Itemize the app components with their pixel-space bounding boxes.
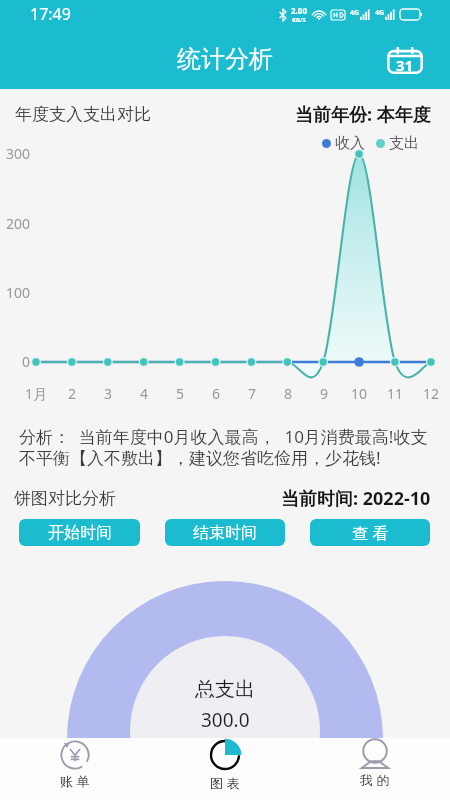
staticText: 4G [350, 8, 360, 18]
other: Profile [361, 741, 389, 769]
staticText: 4 [127, 384, 161, 403]
staticText: 7 [235, 384, 269, 403]
staticText: 当前年份: 本年度 [295, 102, 431, 127]
staticText: 2.00 [291, 5, 307, 16]
staticText: 11 [378, 384, 412, 403]
button[interactable]: Charts [150, 738, 300, 800]
staticText: 300 [0, 144, 30, 163]
staticText: 支出 [389, 134, 419, 153]
button[interactable]: 结束时间 [165, 519, 285, 546]
staticText: 8 [271, 384, 305, 403]
other: Charts [208, 738, 242, 772]
staticText: 分析： 当前年度中0月收入最高， 10月消费最高!收支 不平衡【入不敷出】，建议… [19, 425, 428, 469]
staticText: 年度支入支出对比 [15, 104, 151, 125]
staticText: 100 [0, 283, 30, 302]
staticText: 10 [342, 384, 376, 403]
button[interactable]: 查 看 [310, 519, 430, 546]
staticText: 总支出 [195, 677, 255, 698]
button[interactable]: Calendar [382, 36, 428, 82]
staticText: 6 [199, 384, 233, 403]
staticText: 图 表 [210, 774, 240, 792]
staticText: 300.0 [201, 707, 250, 731]
button[interactable]: Bills [0, 738, 150, 800]
staticText: 1月 [19, 384, 53, 403]
staticText: 饼图对比分析 [14, 488, 116, 509]
staticText: 4G [375, 8, 385, 18]
button[interactable]: 开始时间 [19, 519, 140, 546]
staticText: 9 [307, 384, 341, 403]
staticText: 5 [163, 384, 197, 403]
staticText: 开始时间 [48, 523, 112, 543]
staticText: 3 [91, 384, 125, 403]
staticText: 200 [0, 214, 30, 233]
staticText: 收入 [335, 134, 365, 153]
staticText: 当前时间: 2022-10 [281, 486, 431, 511]
staticText: 0 [0, 352, 30, 371]
staticText: 2 [55, 384, 89, 403]
other: Bills [60, 740, 90, 770]
button[interactable]: Profile [300, 738, 450, 800]
staticText: 17:49 [30, 3, 71, 25]
staticText: 12 [414, 384, 448, 403]
staticText: 31 [396, 55, 414, 75]
staticText: KB/S [292, 16, 306, 24]
staticText: 我 的 [360, 771, 390, 789]
staticText: 账 单 [60, 772, 90, 790]
staticText: 统计分析 [177, 44, 273, 74]
staticText: 结束时间 [193, 523, 257, 543]
staticText: 查 看 [352, 522, 389, 544]
